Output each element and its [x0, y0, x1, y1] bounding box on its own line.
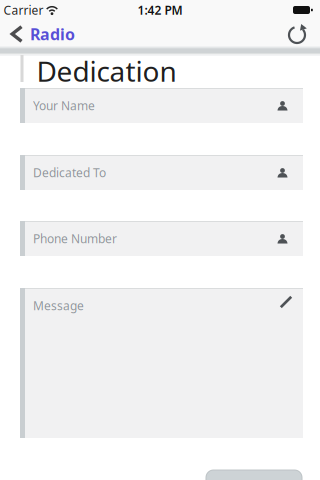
- button[interactable]: Radio: [10, 23, 75, 45]
- staticText: Your Name: [33, 97, 95, 113]
- button[interactable]: Your Name: [20, 88, 303, 123]
- button[interactable]: Refresh: [287, 24, 307, 44]
- staticText: Phone Number: [33, 230, 117, 246]
- staticText: 1:42 PM: [137, 2, 182, 18]
- staticText: Message: [33, 297, 84, 313]
- button[interactable]: Phone Number: [20, 221, 303, 256]
- button[interactable]: Dedicated To: [20, 155, 303, 190]
- staticText: Dedicated To: [33, 164, 106, 180]
- button[interactable]: Send: [205, 469, 302, 480]
- staticText: Radio: [30, 23, 75, 45]
- staticText: Dedication: [36, 52, 176, 90]
- staticText: Carrier: [3, 2, 43, 18]
- button[interactable]: Message: [20, 288, 303, 438]
